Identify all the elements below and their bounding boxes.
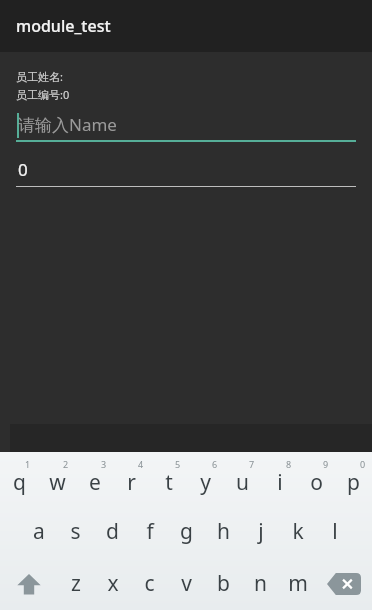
staticText: o (310, 468, 323, 497)
button[interactable]: 2 (38, 452, 76, 505)
staticText: 8 (286, 458, 292, 470)
staticText: 员工编号:0 (16, 87, 70, 102)
button[interactable]: g (168, 505, 205, 557)
button[interactable]: 9 (298, 452, 335, 505)
staticText: 0 (18, 158, 28, 181)
button[interactable]: module_test (0, 0, 372, 52)
staticText: f (146, 517, 154, 546)
staticText: 4 (138, 458, 144, 470)
button[interactable]: 7 (224, 452, 261, 505)
button[interactable]: z (57, 557, 94, 610)
staticText: k (292, 517, 304, 546)
staticText: 3 (101, 458, 107, 470)
button[interactable]: 1 (0, 452, 38, 505)
button[interactable]: Shift (0, 557, 57, 610)
staticText: w (49, 468, 66, 497)
button[interactable]: 4 (113, 452, 150, 505)
staticText: d (106, 517, 119, 546)
button[interactable]: k (279, 505, 316, 557)
button[interactable]: 0 (0, 154, 372, 187)
staticText: p (347, 468, 360, 497)
staticText: 5 (175, 458, 181, 470)
button[interactable]: s (57, 505, 94, 557)
staticText: 0 (360, 458, 366, 470)
staticText: u (236, 468, 249, 497)
staticText: y (200, 468, 211, 497)
staticText: module_test (16, 15, 111, 37)
button[interactable]: m (279, 557, 316, 610)
button[interactable]: h (205, 505, 242, 557)
button[interactable]: d (94, 505, 131, 557)
button[interactable]: n (242, 557, 279, 610)
staticText: c (144, 569, 155, 598)
staticText: s (70, 517, 81, 546)
button[interactable]: a (20, 505, 57, 557)
staticText: e (89, 468, 101, 497)
button[interactable]: b (205, 557, 242, 610)
staticText: 9 (323, 458, 329, 470)
staticText: h (217, 517, 230, 546)
staticText: z (71, 569, 81, 598)
staticText: m (288, 569, 308, 598)
staticText: 请输入Name (18, 113, 117, 136)
button[interactable]: 8 (261, 452, 298, 505)
button[interactable]: j (242, 505, 279, 557)
staticText: 1 (25, 458, 31, 470)
button[interactable]: 6 (187, 452, 224, 505)
staticText: l (332, 517, 338, 546)
button[interactable]: c (131, 557, 168, 610)
staticText: a (33, 517, 45, 546)
button[interactable]: x (94, 557, 131, 610)
button[interactable]: f (131, 505, 168, 557)
button[interactable]: l (316, 505, 353, 557)
staticText: 2 (63, 458, 69, 470)
staticText: t (165, 468, 173, 497)
button[interactable]: 0 (335, 452, 372, 505)
staticText: r (127, 468, 136, 497)
button[interactable]: 3 (76, 452, 113, 505)
staticText: 6 (212, 458, 218, 470)
button[interactable]: Delete (316, 557, 372, 610)
staticText: n (254, 569, 267, 598)
button[interactable]: v (168, 557, 205, 610)
staticText: b (217, 569, 230, 598)
staticText: j (258, 517, 264, 546)
staticText: g (180, 517, 193, 546)
button[interactable]: 请输入Name (0, 109, 372, 142)
staticText: i (277, 468, 283, 497)
staticText: q (13, 468, 26, 497)
staticText: v (181, 569, 192, 598)
staticText: 7 (249, 458, 255, 470)
staticText: x (107, 569, 119, 598)
staticText: 员工姓名: (16, 69, 63, 84)
button[interactable]: 5 (150, 452, 187, 505)
